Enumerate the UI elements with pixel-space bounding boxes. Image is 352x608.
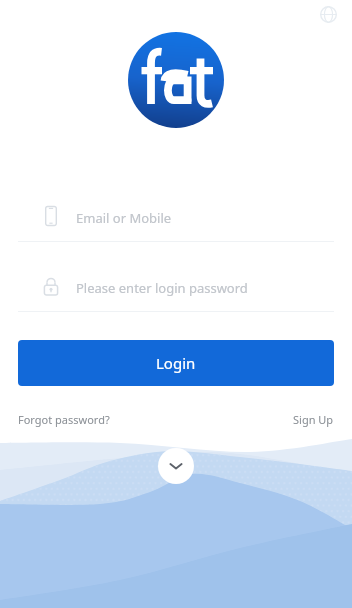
staticText: Login [156,353,196,373]
staticText: Sign Up [293,412,334,427]
button[interactable]: Login [18,340,334,386]
button[interactable]: Language [316,2,340,26]
button[interactable]: Please enter login password [18,273,334,311]
button[interactable]: Email or Mobile [18,203,334,241]
staticText: Forgot password? [18,412,110,427]
staticText: Email or Mobile [76,209,172,227]
button[interactable]: Forgot password? [18,412,110,427]
staticText: Please enter login password [76,279,248,297]
button[interactable]: Sign Up [293,412,334,427]
button[interactable]: Expand [158,448,194,484]
